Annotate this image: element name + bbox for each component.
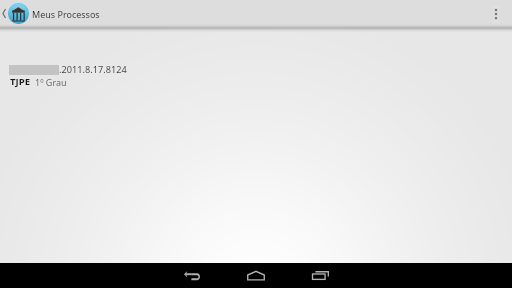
- button[interactable]: .2011.8.17.8124: [0, 28, 512, 88]
- button[interactable]: Back: [176, 263, 208, 288]
- staticText: TJPE: [10, 75, 31, 88]
- staticText: 1º Grau: [35, 76, 67, 88]
- button[interactable]: More options: [484, 0, 508, 27]
- button[interactable]: Navigate up: [0, 0, 29, 27]
- button[interactable]: Home: [240, 263, 272, 288]
- button[interactable]: Recent apps: [304, 263, 336, 288]
- staticText: .2011.8.17.8124: [59, 63, 127, 76]
- staticText: Meus Processos: [32, 8, 100, 20]
